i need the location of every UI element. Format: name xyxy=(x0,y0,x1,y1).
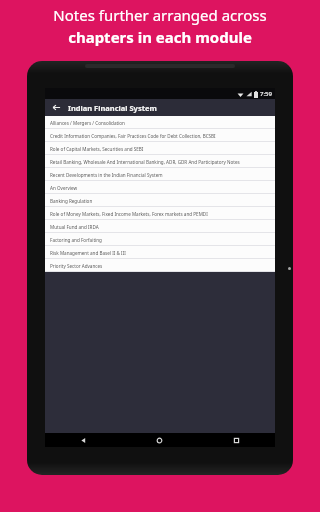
button[interactable]: Factoring and Forfaiting xyxy=(45,233,275,246)
button[interactable]: Recent apps xyxy=(198,433,275,447)
button[interactable]: Alliances / Mergers / Consolidation xyxy=(45,116,275,129)
button[interactable]: Mutual Fund and IRDA xyxy=(45,220,275,233)
staticText: Risk Management and Basel II & III xyxy=(50,250,126,256)
staticText: Role of Capital Markets, Securities and … xyxy=(50,146,144,152)
staticText: Priority Sector Advances xyxy=(50,263,103,269)
staticText: Alliances / Mergers / Consolidation xyxy=(50,120,125,126)
button[interactable]: Home xyxy=(121,433,198,447)
staticText: chapters in each module xyxy=(68,27,252,47)
button[interactable]: Risk Management and Basel II & III xyxy=(45,246,275,259)
staticText: An Overview xyxy=(50,185,78,191)
staticText: Notes further arranged across xyxy=(53,5,267,25)
button[interactable]: Role of Capital Markets, Securities and … xyxy=(45,142,275,155)
button[interactable]: Banking Regulation xyxy=(45,194,275,207)
button[interactable]: Back xyxy=(45,99,68,116)
button[interactable]: Retail Banking, Wholesale And Internatio… xyxy=(45,155,275,168)
button[interactable]: Credit Information Companies, Fair Pract… xyxy=(45,129,275,142)
staticText: Banking Regulation xyxy=(50,198,93,204)
staticText: Role of Money Markets, Fixed Income Mark… xyxy=(50,211,208,217)
staticText: Retail Banking, Wholesale And Internatio… xyxy=(50,159,240,165)
staticText: Factoring and Forfaiting xyxy=(50,237,102,243)
button[interactable]: Role of Money Markets, Fixed Income Mark… xyxy=(45,207,275,220)
button[interactable]: Back xyxy=(45,433,121,447)
button[interactable]: An Overview xyxy=(45,181,275,194)
staticText: Mutual Fund and IRDA xyxy=(50,224,99,230)
staticText: Indian Financial System xyxy=(68,103,157,113)
staticText: Recent Developments in the Indian Financ… xyxy=(50,172,163,178)
button[interactable]: Recent Developments in the Indian Financ… xyxy=(45,168,275,181)
staticText: 7:59 xyxy=(260,90,272,98)
staticText: Credit Information Companies, Fair Pract… xyxy=(50,133,216,139)
button[interactable]: Priority Sector Advances xyxy=(45,259,275,272)
